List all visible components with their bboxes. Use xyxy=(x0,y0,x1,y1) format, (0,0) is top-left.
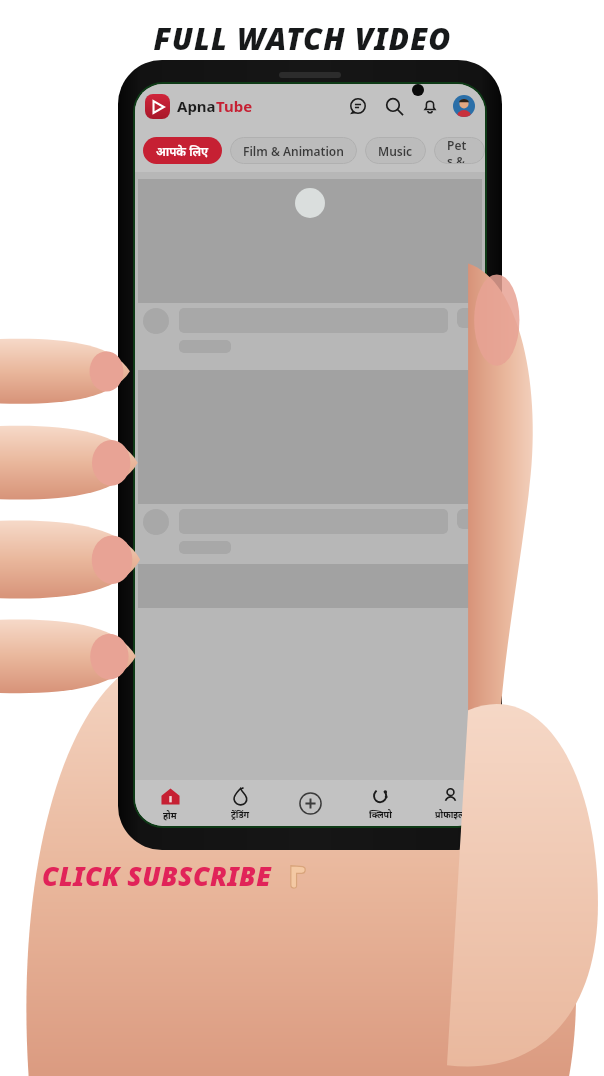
button[interactable]: Film & Animation xyxy=(230,137,357,164)
button[interactable]: Music xyxy=(365,137,426,164)
button[interactable]: ApnaTube xyxy=(145,94,170,119)
staticText: प्रोफाइल xyxy=(435,808,465,820)
staticText: Music xyxy=(378,143,413,159)
button[interactable]: प्रोफाइल xyxy=(415,780,485,826)
button[interactable]: Account xyxy=(453,95,475,117)
staticText: आपके लिए xyxy=(156,143,209,159)
button[interactable]: Create xyxy=(275,780,345,826)
staticText: Pets & xyxy=(447,137,472,164)
staticText: Tube xyxy=(216,96,253,116)
staticText: ट्रेंडिंग xyxy=(231,808,250,820)
staticText: FULL WATCH VIDEO xyxy=(153,18,452,59)
staticText: Apna xyxy=(177,96,216,116)
button[interactable]: Notifications xyxy=(419,95,441,117)
button[interactable]: क्लिपो xyxy=(345,780,415,826)
staticText: होम xyxy=(163,809,177,821)
staticText: Film & Animation xyxy=(243,143,344,159)
button[interactable]: ट्रेंडिंग xyxy=(205,780,275,826)
button[interactable]: Search xyxy=(383,95,405,117)
button[interactable]: आपके लिए xyxy=(143,137,222,164)
staticText: CLICK SUBSCRIBE xyxy=(42,858,272,893)
button[interactable]: होम xyxy=(135,780,205,826)
button[interactable]: Messages xyxy=(347,95,369,117)
staticText: क्लिपो xyxy=(369,808,392,820)
button[interactable]: Pets & xyxy=(434,137,485,164)
